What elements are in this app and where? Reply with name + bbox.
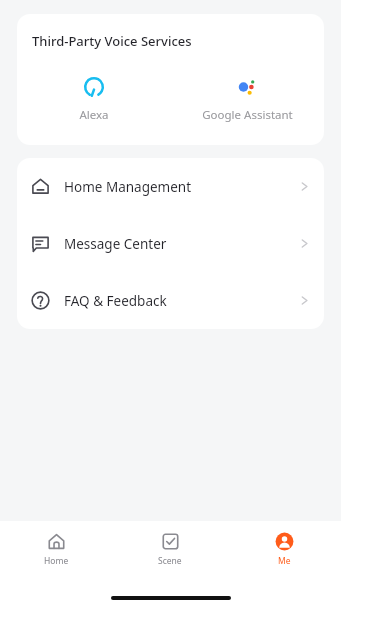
button[interactable]: Alexa <box>17 72 170 125</box>
staticText: Message Center <box>64 235 299 253</box>
staticText: Home Management <box>64 178 299 196</box>
button[interactable]: Scene <box>113 521 227 576</box>
button[interactable]: FAQ & Feedback <box>17 272 324 329</box>
staticText: FAQ & Feedback <box>64 292 299 310</box>
button[interactable]: Home Management <box>17 158 324 215</box>
button[interactable]: Message Center <box>17 215 324 272</box>
staticText: Me <box>278 555 291 567</box>
button[interactable]: Home <box>0 521 113 576</box>
staticText: Scene <box>158 555 182 567</box>
button[interactable]: Google Assistant <box>170 72 324 125</box>
staticText: Home <box>44 555 69 567</box>
button[interactable]: Me <box>227 521 341 576</box>
staticText: Third-Party Voice Services <box>32 32 192 50</box>
staticText: Alexa <box>79 107 109 123</box>
staticText: Google Assistant <box>202 107 293 123</box>
